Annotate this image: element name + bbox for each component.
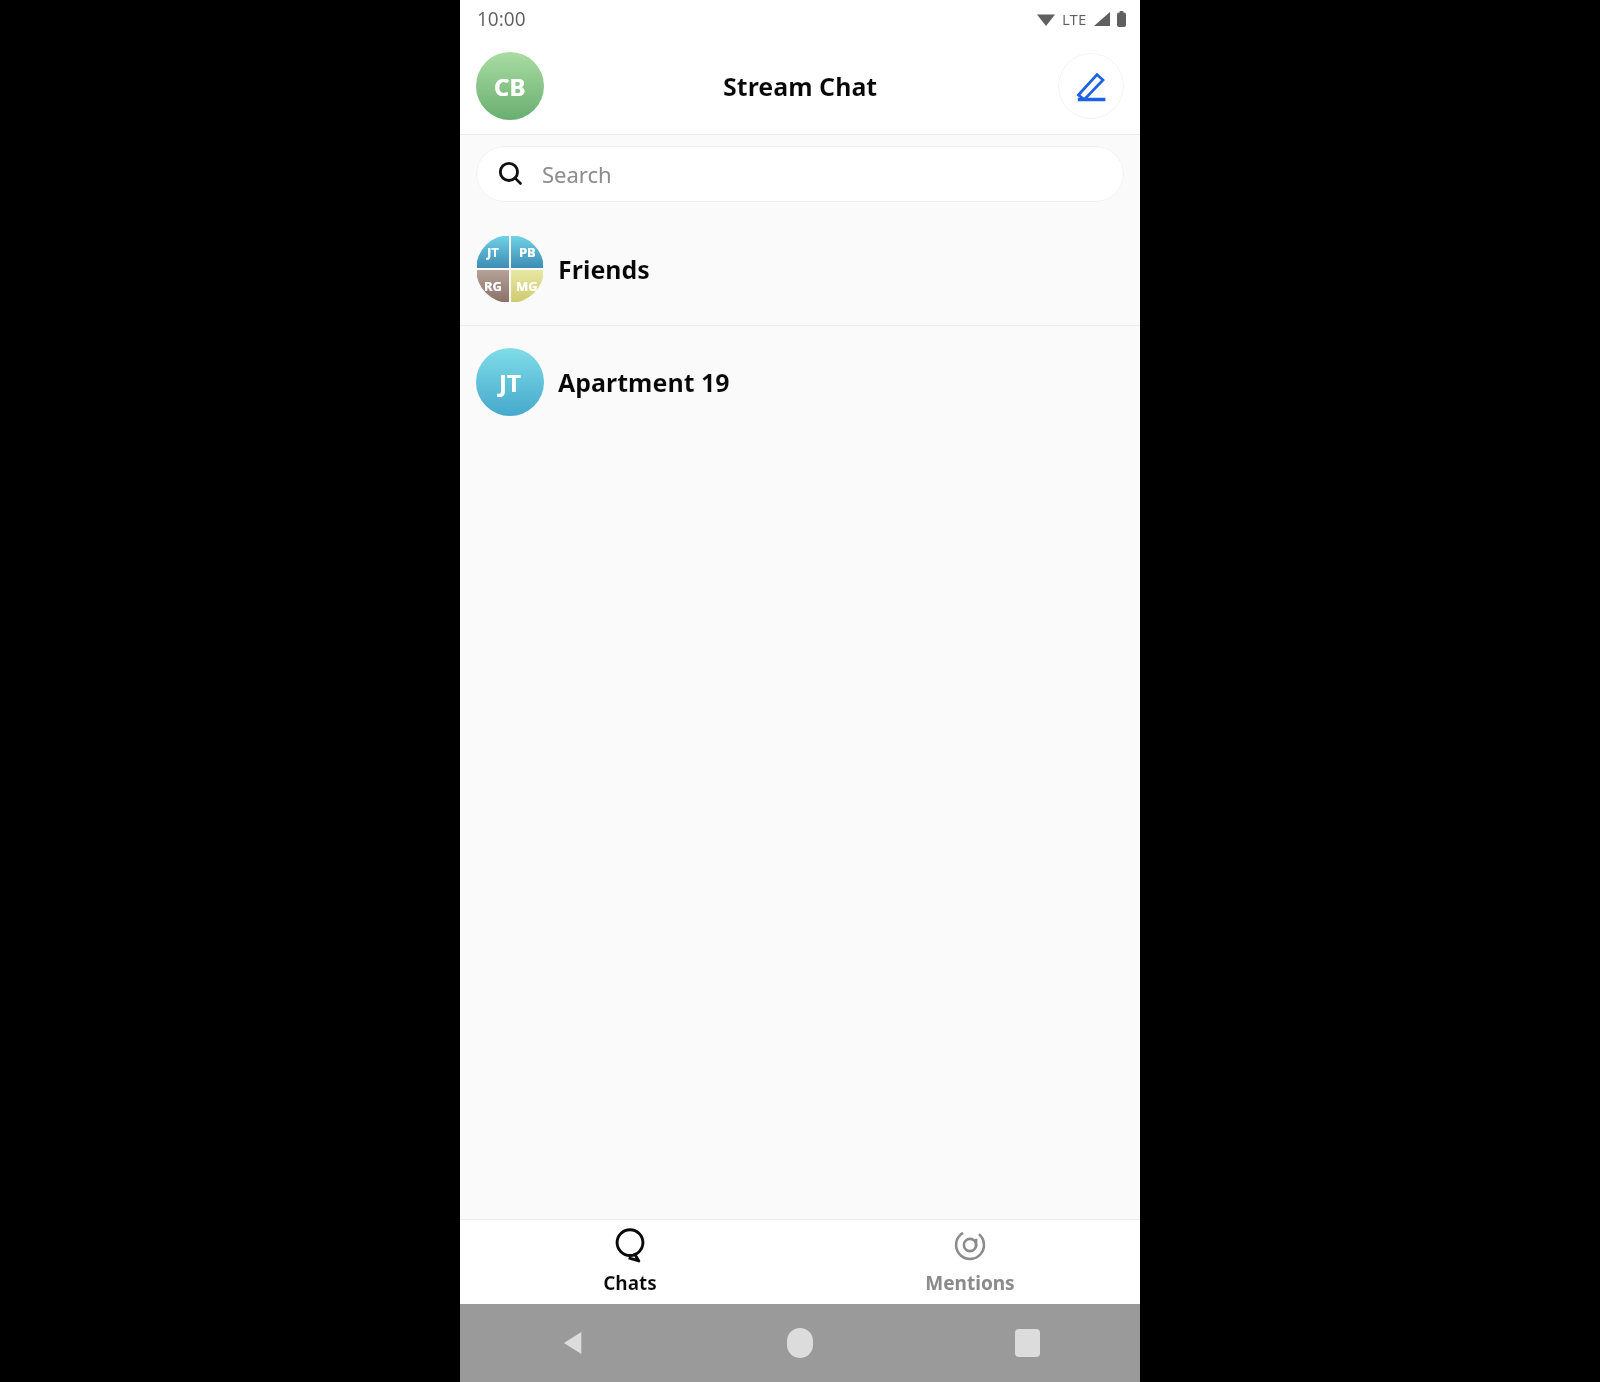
staticText: CB [494, 70, 526, 103]
button[interactable]: Search [476, 146, 1124, 202]
staticText: PB [519, 243, 536, 261]
staticText: Apartment 19 [558, 365, 730, 399]
button[interactable]: Recents [1007, 1323, 1047, 1363]
staticText: 10:00 [477, 6, 526, 32]
staticText: Stream Chat [723, 69, 878, 103]
staticText: MG [516, 277, 538, 295]
staticText: RG [484, 277, 502, 295]
button[interactable]: Back [553, 1323, 593, 1363]
staticText: Chats [603, 1270, 657, 1296]
staticText: JT [499, 366, 521, 399]
button[interactable]: JT [460, 326, 1140, 438]
staticText: Friends [558, 252, 650, 286]
button[interactable]: Mentions [800, 1220, 1140, 1304]
staticText: Search [542, 159, 612, 189]
button[interactable]: Chats [460, 1220, 800, 1304]
button[interactable]: New message [1058, 53, 1124, 119]
button[interactable]: Profile [476, 52, 544, 120]
button[interactable]: JT [460, 213, 1140, 325]
staticText: JT [487, 243, 499, 261]
staticText: Mentions [925, 1270, 1015, 1296]
button[interactable]: Home [780, 1323, 820, 1363]
staticText: LTE [1062, 9, 1087, 29]
